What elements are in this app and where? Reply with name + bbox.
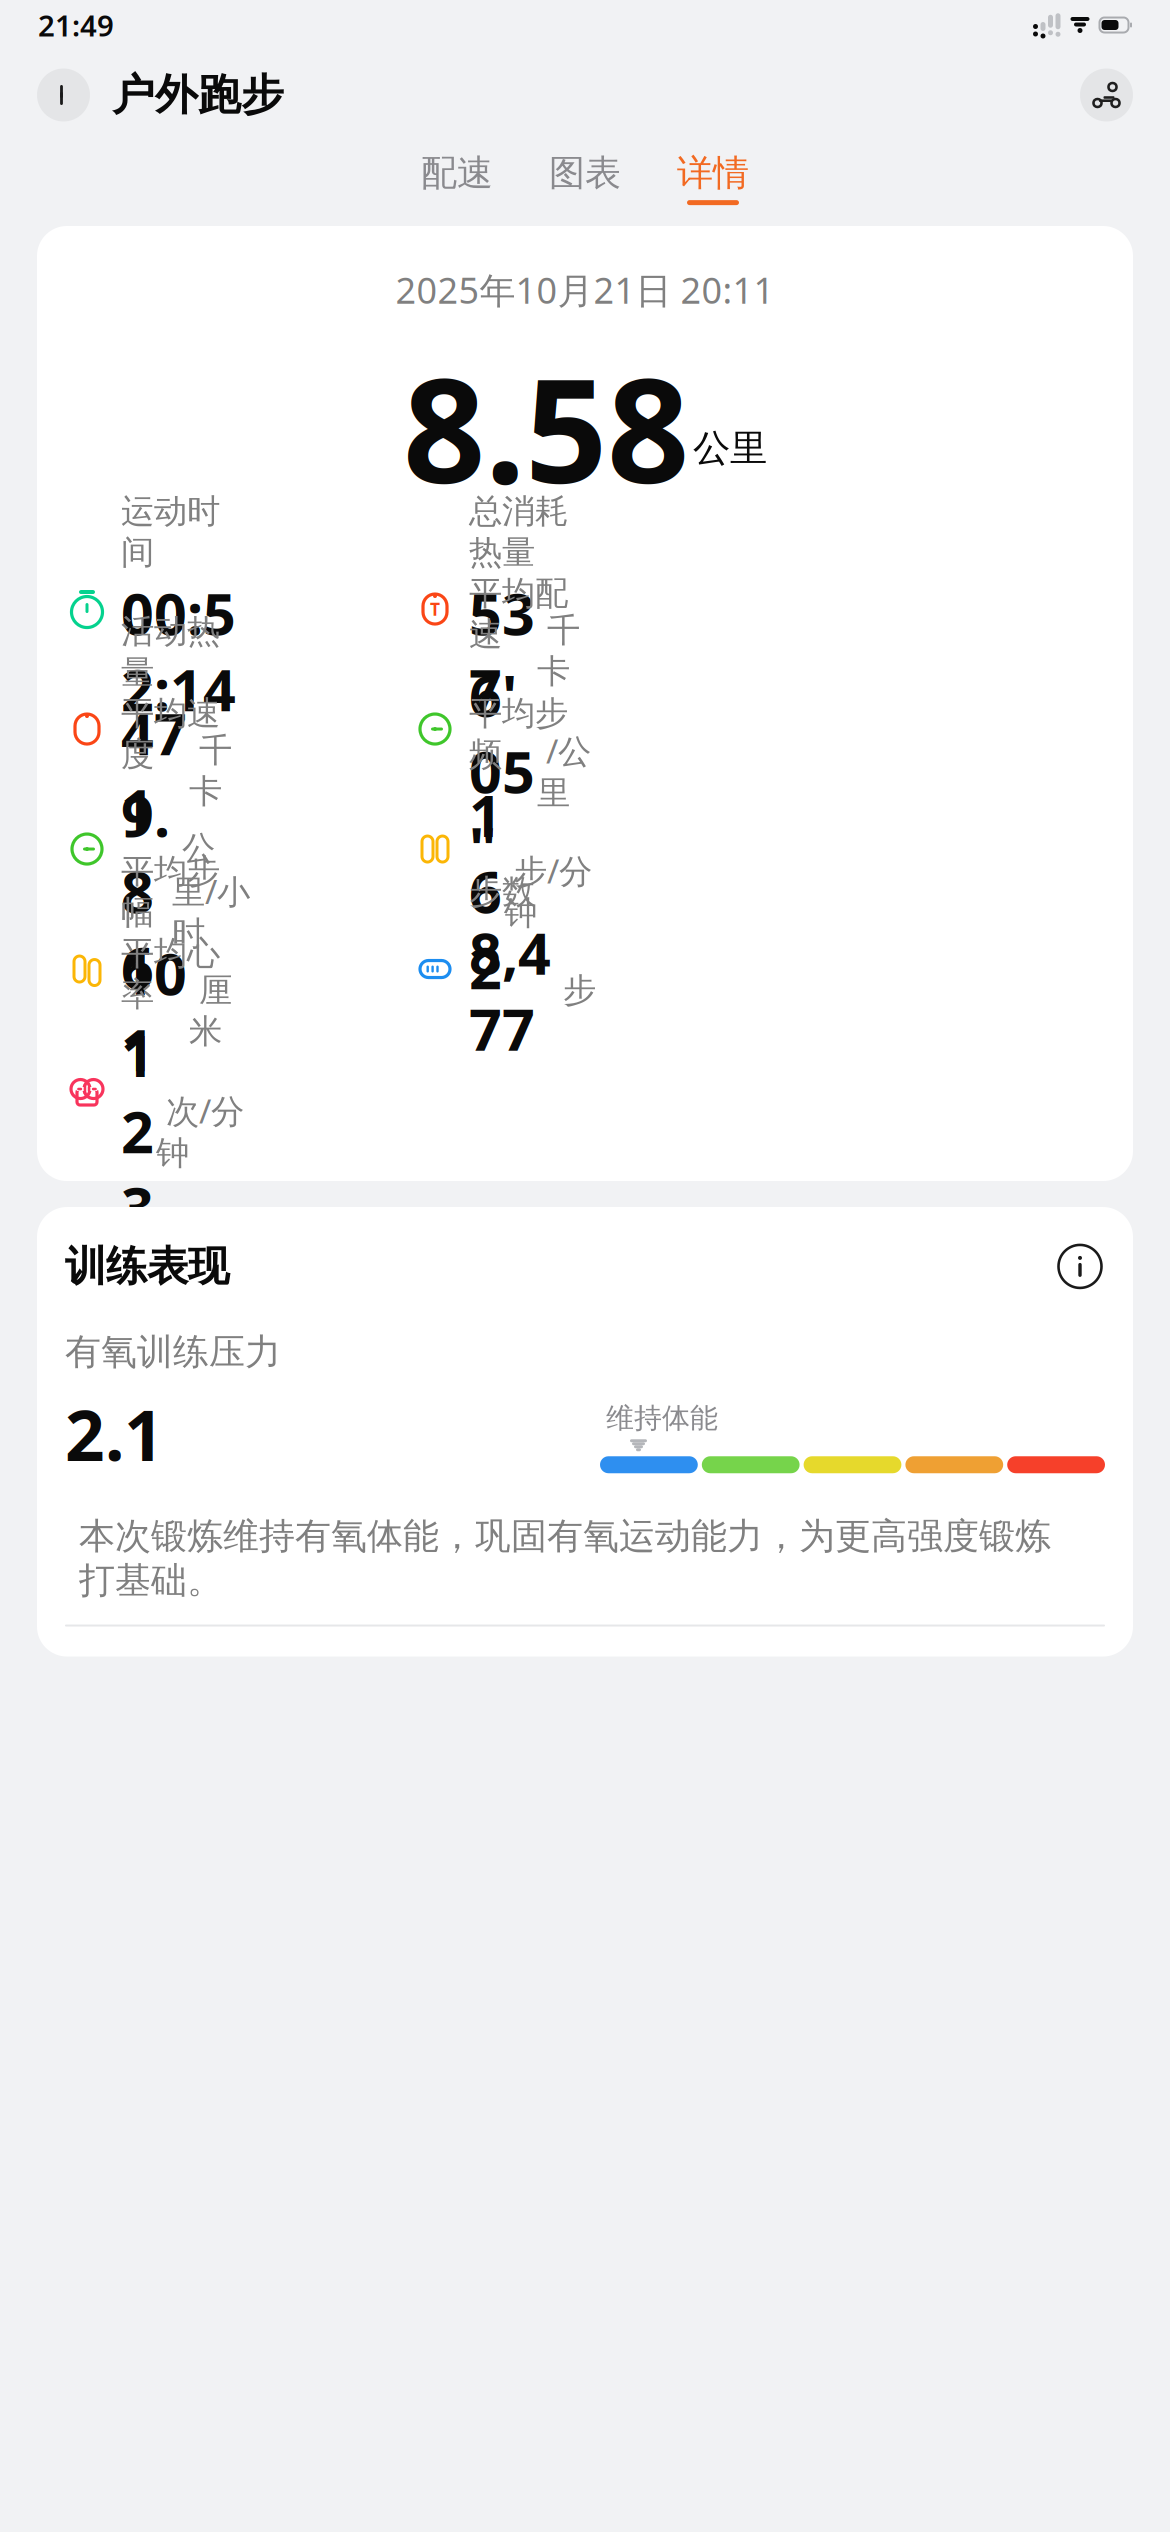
- staticText: 户外跑步: [112, 69, 284, 121]
- staticText: 详情: [677, 151, 749, 195]
- staticText: 步: [553, 970, 596, 1011]
- button[interactable]: 图表: [539, 151, 631, 205]
- staticText: 维持体能: [606, 1401, 718, 1435]
- staticText: 9.86: [121, 777, 170, 1005]
- staticText: T: [430, 597, 440, 620]
- staticText: 有氧训练压力: [65, 1330, 281, 1374]
- staticText: 运动时间: [121, 491, 220, 573]
- staticText: 步数: [469, 871, 535, 912]
- button[interactable]: Back: [37, 68, 90, 121]
- staticText: 101: [121, 935, 187, 1087]
- staticText: /公里: [537, 728, 591, 814]
- staticText: 千卡: [537, 610, 580, 692]
- staticText: 平均心率: [121, 933, 220, 1015]
- staticText: 本次锻炼维持有氧体能，巩固有氧运动能力，为更高强度锻炼打基础。: [79, 1514, 1051, 1602]
- staticText: 活动热量: [121, 611, 220, 693]
- staticText: 次/分钟: [156, 1088, 244, 1174]
- staticText: 2025年10月21日 20:11: [395, 266, 774, 314]
- button[interactable]: 配速: [411, 151, 503, 205]
- staticText: 公里/小时: [172, 828, 250, 954]
- staticText: 厘米: [189, 970, 232, 1052]
- staticText: 配速: [421, 151, 493, 195]
- button[interactable]: Share: [1080, 68, 1133, 121]
- staticText: 总消耗热量: [469, 491, 568, 573]
- staticText: 训练表现: [65, 1241, 229, 1292]
- staticText: 千卡: [189, 730, 232, 812]
- staticText: 平均步频: [469, 693, 568, 775]
- button[interactable]: 详情: [667, 151, 759, 205]
- staticText: 平均配速: [469, 573, 568, 655]
- staticText: 2.1: [65, 1388, 164, 1480]
- staticText: 8,477: [469, 914, 551, 1067]
- staticText: 21:49: [38, 5, 114, 44]
- staticText: 162: [469, 777, 502, 1005]
- staticText: 00:52:14: [121, 575, 236, 727]
- staticText: 471: [121, 695, 187, 847]
- button[interactable]: Info: [1055, 1241, 1105, 1291]
- staticText: 8.58: [403, 332, 689, 523]
- staticText: 平均速度: [121, 693, 220, 775]
- staticText: 123: [121, 1017, 154, 1245]
- staticText: 步/分钟: [504, 848, 592, 934]
- staticText: 6'05": [469, 657, 535, 885]
- staticText: 图表: [549, 151, 621, 195]
- staticText: 公里: [693, 425, 767, 471]
- staticText: 平均步幅: [121, 851, 220, 933]
- staticText: 537: [469, 575, 535, 727]
